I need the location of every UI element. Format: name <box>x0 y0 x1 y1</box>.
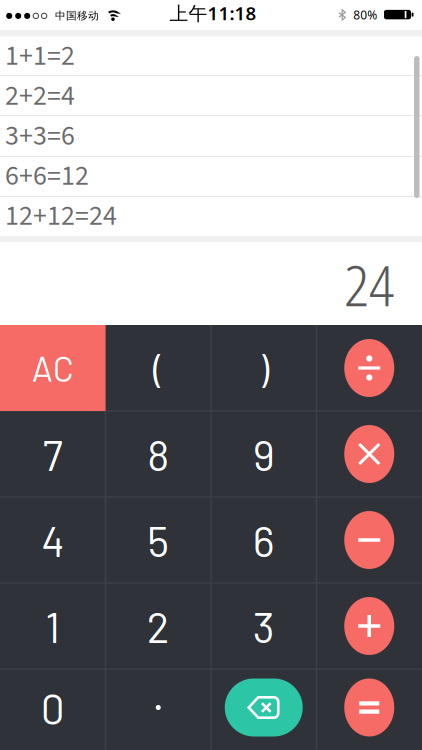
staticText: 7 <box>43 429 63 479</box>
staticText: 2 <box>147 601 170 651</box>
button[interactable]: 8 <box>106 412 210 496</box>
staticText: 2+2=4 <box>5 76 75 116</box>
staticText: ) <box>259 344 269 392</box>
staticText: 8 <box>147 429 169 479</box>
staticText: 0 <box>41 682 65 733</box>
staticText: 4 <box>41 515 64 565</box>
staticText: 1 <box>45 601 60 651</box>
button[interactable]: 9 <box>212 412 316 496</box>
button[interactable]: ) <box>212 326 316 410</box>
button[interactable]: Equals <box>344 678 394 736</box>
button[interactable]: Subtract <box>344 511 394 569</box>
button[interactable]: 3 <box>212 584 316 668</box>
staticText: 3+3=6 <box>5 116 75 156</box>
staticText: 80% <box>353 7 377 23</box>
button[interactable]: Multiply <box>344 425 394 483</box>
staticText: 6 <box>253 515 275 565</box>
staticText: ( <box>153 344 163 392</box>
staticText: 3 <box>253 601 275 651</box>
button[interactable]: 7 <box>1 412 105 496</box>
staticText: 1+1=2 <box>5 36 75 76</box>
staticText: 中国移动 <box>55 9 99 22</box>
staticText: 12+12=24 <box>5 196 117 236</box>
staticText: 5 <box>147 515 169 565</box>
staticText: 上午11:18 <box>169 0 256 25</box>
button[interactable]: Decimal point <box>106 667 210 747</box>
button[interactable]: 2 <box>106 584 210 668</box>
button[interactable]: 6 <box>212 498 316 582</box>
staticText: AC <box>32 347 74 389</box>
button[interactable]: Divide <box>344 339 394 397</box>
staticText: 9 <box>253 429 275 479</box>
button[interactable]: Delete <box>225 678 303 736</box>
staticText: 6+6=12 <box>5 156 89 196</box>
staticText: 24 <box>344 248 394 322</box>
button[interactable]: 5 <box>106 498 210 582</box>
button[interactable]: AC <box>0 325 105 411</box>
button[interactable]: 0 <box>1 665 105 749</box>
button[interactable]: 4 <box>1 498 105 582</box>
button[interactable]: 1 <box>1 584 105 668</box>
button[interactable]: Add <box>344 597 394 655</box>
button[interactable]: ( <box>106 326 210 410</box>
